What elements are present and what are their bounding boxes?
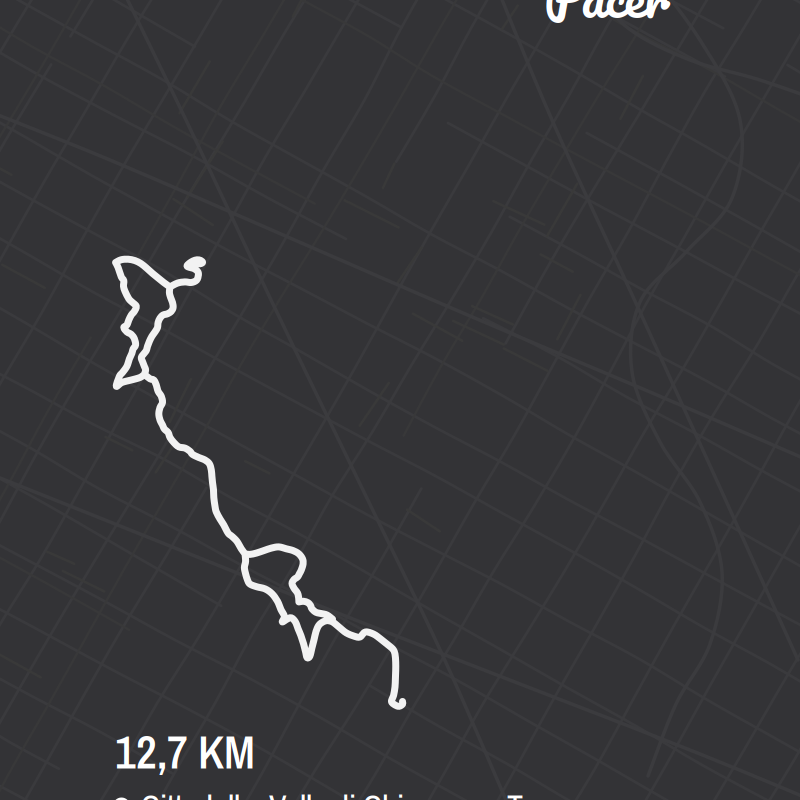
button[interactable]: Pacer [544, 0, 670, 42]
staticText: Cittadella, Valle di Chiavenna, T [141, 784, 523, 800]
staticText: Pacer [544, 0, 670, 42]
staticText: 12,7 KM [115, 721, 255, 783]
